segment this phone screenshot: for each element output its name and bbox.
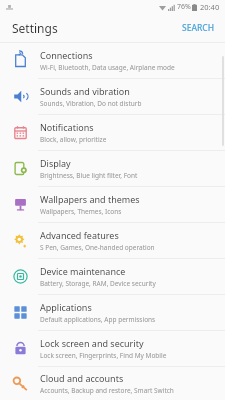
staticText: Sounds, Vibration, Do not disturb bbox=[40, 99, 142, 108]
staticText: Connections bbox=[40, 49, 93, 61]
staticText: Default applications, App permissions bbox=[40, 315, 156, 324]
staticText: Wi-Fi, Bluetooth, Data usage, Airplane m… bbox=[40, 63, 175, 72]
other: apps bbox=[13, 305, 28, 320]
other: lock bbox=[13, 341, 28, 356]
other: conn bbox=[13, 53, 28, 68]
staticText: Brightness, Blue light filter, Font bbox=[40, 171, 138, 180]
staticText: Cloud and accounts bbox=[40, 372, 124, 384]
button[interactable]: wall bbox=[0, 187, 225, 222]
button[interactable]: apps bbox=[0, 295, 225, 330]
button[interactable]: lock bbox=[0, 331, 225, 366]
button[interactable]: conn bbox=[0, 43, 225, 78]
staticText: Block, allow, prioritize bbox=[40, 135, 107, 144]
staticText: Sounds and vibration bbox=[40, 85, 130, 97]
other: display bbox=[13, 161, 28, 176]
button[interactable]: cloud bbox=[0, 367, 225, 400]
other: cloud bbox=[13, 376, 28, 391]
staticText: Battery, Storage, RAM, Device security bbox=[40, 279, 156, 288]
staticText: S Pen, Games, One-handed operation bbox=[40, 243, 155, 252]
staticText: SEARCH bbox=[182, 22, 215, 34]
staticText: 76% bbox=[177, 2, 191, 12]
button[interactable]: notif bbox=[0, 115, 225, 150]
staticText: Display bbox=[40, 157, 71, 169]
button[interactable]: adv bbox=[0, 223, 225, 258]
other: sound bbox=[13, 89, 28, 104]
staticText: Advanced features bbox=[40, 229, 119, 241]
button[interactable]: maint bbox=[0, 259, 225, 294]
staticText: Notifications bbox=[40, 121, 94, 133]
staticText: Device maintenance bbox=[40, 265, 126, 277]
other: notif bbox=[13, 125, 28, 140]
staticText: Lock screen and security bbox=[40, 337, 144, 349]
other: adv bbox=[13, 233, 28, 248]
other: wall bbox=[13, 197, 28, 212]
staticText: Accounts, Backup and restore, Smart Swit… bbox=[40, 386, 174, 395]
button[interactable]: sound bbox=[0, 79, 225, 114]
staticText: Settings bbox=[12, 20, 58, 36]
staticText: Wallpapers, Themes, Icons bbox=[40, 207, 122, 216]
other: maint bbox=[13, 269, 28, 284]
staticText: Lock screen, Fingerprints, Find My Mobil… bbox=[40, 351, 167, 360]
staticText: Applications bbox=[40, 301, 92, 313]
staticText: Wallpapers and themes bbox=[40, 193, 140, 205]
button[interactable]: display bbox=[0, 151, 225, 186]
staticText: 20:40 bbox=[200, 2, 220, 12]
button[interactable]: SEARCH bbox=[172, 17, 225, 39]
